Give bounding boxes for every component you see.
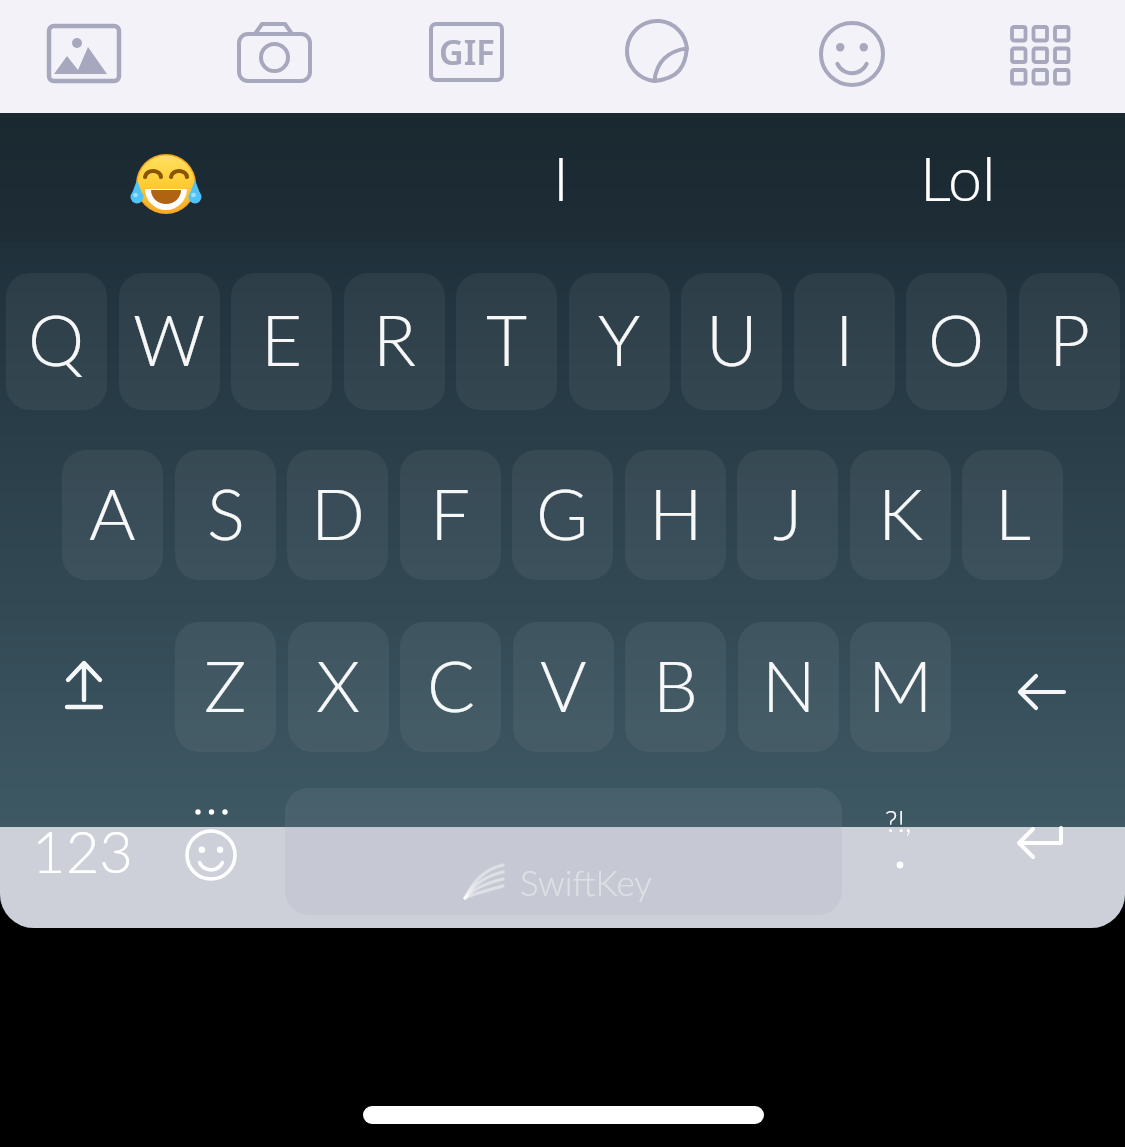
staticText: Y (598, 296, 641, 381)
staticText: H (649, 470, 703, 555)
staticText: W (133, 296, 206, 381)
button[interactable]: B (625, 622, 726, 752)
button[interactable]: J (737, 450, 838, 580)
staticText: U (706, 296, 758, 381)
staticText: I (835, 296, 854, 381)
button[interactable]: V (513, 622, 614, 752)
button[interactable]: 123 (20, 811, 145, 891)
button[interactable] (992, 637, 1092, 737)
button[interactable]: N (738, 622, 839, 752)
button[interactable]: Y (569, 273, 670, 410)
staticText: 123 (32, 816, 133, 886)
staticText: T (486, 296, 528, 381)
staticText: F (430, 470, 471, 555)
button[interactable]: Z (175, 622, 276, 752)
button[interactable]: I (794, 273, 895, 410)
staticText: GIF (439, 29, 495, 75)
staticText: Lol (920, 141, 996, 214)
button[interactable]: X (288, 622, 389, 752)
button[interactable] (40, 18, 128, 90)
button[interactable] (855, 827, 945, 917)
button[interactable] (0, 113, 375, 242)
staticText: J (773, 470, 803, 555)
button[interactable]: K (850, 450, 951, 580)
staticText: C (427, 642, 475, 727)
button[interactable] (34, 637, 134, 737)
staticText: S (207, 470, 245, 555)
staticText: SwiftKey (520, 861, 652, 903)
button[interactable] (285, 788, 842, 918)
button[interactable]: Q (6, 273, 107, 410)
staticText: Z (204, 642, 247, 727)
button[interactable]: GIF (423, 16, 511, 88)
button[interactable]: U (681, 273, 782, 410)
staticText: Q (28, 296, 85, 381)
staticText: M (868, 642, 933, 727)
staticText: K (878, 470, 924, 555)
staticText: A (89, 470, 136, 555)
button[interactable] (231, 16, 319, 88)
button[interactable]: A (62, 450, 163, 580)
staticText: P (1049, 296, 1091, 381)
button[interactable]: O (906, 273, 1007, 410)
button[interactable] (375, 113, 750, 242)
button[interactable] (808, 10, 896, 98)
staticText: X (316, 642, 361, 727)
staticText: G (536, 470, 589, 555)
button[interactable]: D (287, 450, 388, 580)
staticText: D (311, 470, 365, 555)
button[interactable]: M (850, 622, 951, 752)
button[interactable] (985, 827, 1095, 917)
button[interactable] (1000, 15, 1080, 95)
button[interactable]: G (512, 450, 613, 580)
staticText: B (653, 642, 698, 727)
staticText: L (995, 470, 1031, 555)
staticText: O (928, 296, 985, 381)
staticText: R (373, 296, 417, 381)
button[interactable] (614, 13, 702, 89)
button[interactable]: R (344, 273, 445, 410)
staticText: N (762, 642, 816, 727)
button[interactable]: SwiftKey (285, 827, 842, 915)
button[interactable]: F (400, 450, 501, 580)
staticText: ?!, (885, 803, 912, 838)
button[interactable]: W (119, 273, 220, 410)
button[interactable]: P (1019, 273, 1120, 410)
staticText: V (540, 642, 587, 727)
button[interactable] (170, 827, 254, 907)
button[interactable]: H (625, 450, 726, 580)
staticText: E (261, 296, 303, 381)
button[interactable]: T (456, 273, 557, 410)
button[interactable]: S (175, 450, 276, 580)
button[interactable]: L (962, 450, 1063, 580)
button[interactable] (750, 113, 1125, 242)
button[interactable]: E (231, 273, 332, 410)
staticText: I (553, 141, 569, 214)
button[interactable]: C (400, 622, 501, 752)
